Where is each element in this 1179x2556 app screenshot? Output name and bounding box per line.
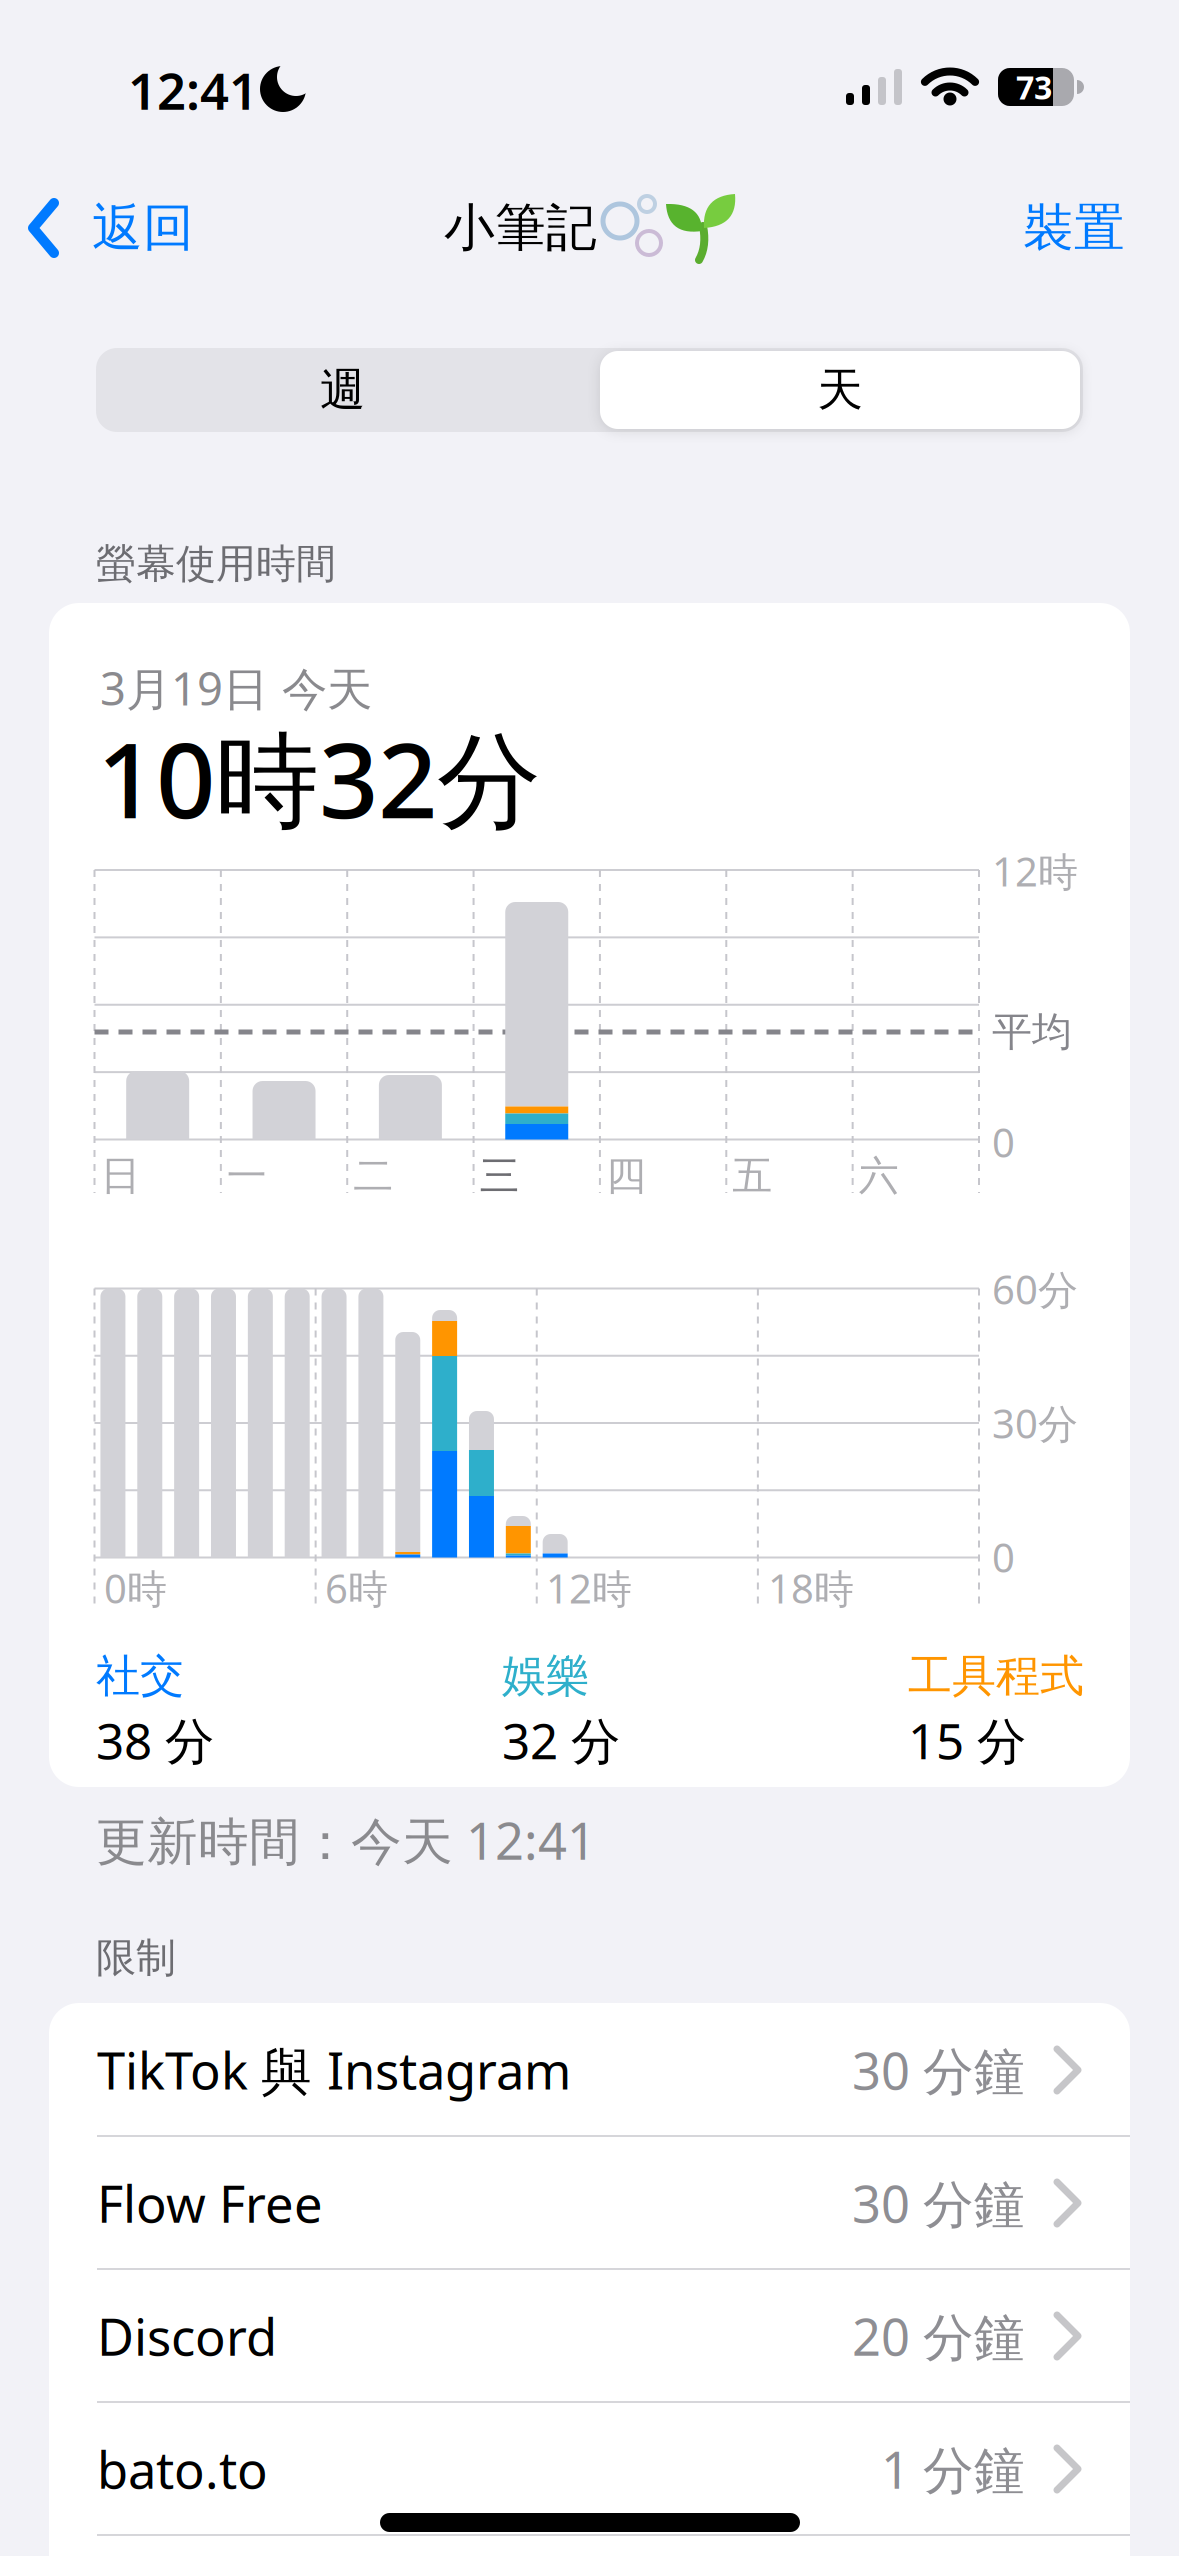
staticText: 18時	[768, 1561, 854, 1614]
staticText: 六	[859, 1151, 899, 1200]
staticText: 天	[817, 362, 862, 418]
staticText: Discord	[97, 2302, 277, 2370]
button[interactable]: bato.to	[49, 2402, 1130, 2535]
staticText: 娛樂	[502, 1649, 590, 1703]
staticText: 社交	[96, 1649, 184, 1703]
staticText: 32 分	[502, 1707, 620, 1773]
staticText: 四	[606, 1151, 646, 1200]
staticText: 更新時間：今天 12:41	[96, 1806, 596, 1874]
staticText: 裝置	[1023, 197, 1125, 259]
staticText: 一	[227, 1151, 267, 1200]
staticText: 二	[353, 1151, 393, 1200]
staticText: 限制	[96, 1933, 176, 1982]
staticText: 38 分	[96, 1707, 214, 1773]
staticText: 返回	[92, 197, 194, 259]
button[interactable]: 天	[600, 351, 1080, 429]
staticText: 12時	[992, 844, 1078, 897]
staticText: 小筆記	[444, 197, 597, 259]
staticText: 五	[732, 1151, 772, 1200]
button[interactable]: 週	[96, 348, 589, 432]
staticText: 週	[320, 362, 365, 418]
staticText: 12:41	[128, 56, 258, 124]
staticText: 30 分鐘	[852, 2169, 1025, 2237]
staticText: 20 分鐘	[852, 2302, 1025, 2370]
button[interactable]: TikTok 與 Instagram	[49, 2003, 1130, 2136]
staticText: 15 分	[908, 1707, 1026, 1773]
staticText: 1 分鐘	[881, 2435, 1025, 2503]
staticText: 12時	[546, 1561, 632, 1614]
staticText: 30 分鐘	[852, 2036, 1025, 2104]
staticText: 6時	[325, 1561, 388, 1614]
staticText: 10時32分	[97, 709, 541, 847]
staticText: 0時	[104, 1561, 167, 1614]
staticText: 三	[480, 1151, 520, 1200]
button[interactable]: Flow Free	[49, 2136, 1130, 2269]
staticText: 73	[1016, 66, 1052, 108]
staticText: 平均	[992, 1007, 1072, 1056]
staticText: 30分	[992, 1396, 1078, 1449]
staticText: 日	[100, 1151, 140, 1200]
staticText: 60分	[992, 1262, 1078, 1315]
staticText: bato.to	[97, 2435, 268, 2503]
staticText: 螢幕使用時間	[96, 539, 336, 588]
staticText: Flow Free	[97, 2169, 323, 2237]
staticText: 3月19日 今天	[100, 658, 372, 718]
staticText: TikTok 與 Instagram	[97, 2036, 571, 2104]
staticText: 工具程式	[908, 1649, 1084, 1703]
button[interactable]: Discord	[49, 2269, 1130, 2402]
button[interactable]: 裝置	[960, 190, 1125, 270]
staticText: 0	[992, 1115, 1015, 1168]
button[interactable]: 返回	[20, 190, 320, 270]
staticText: 0	[992, 1530, 1015, 1583]
